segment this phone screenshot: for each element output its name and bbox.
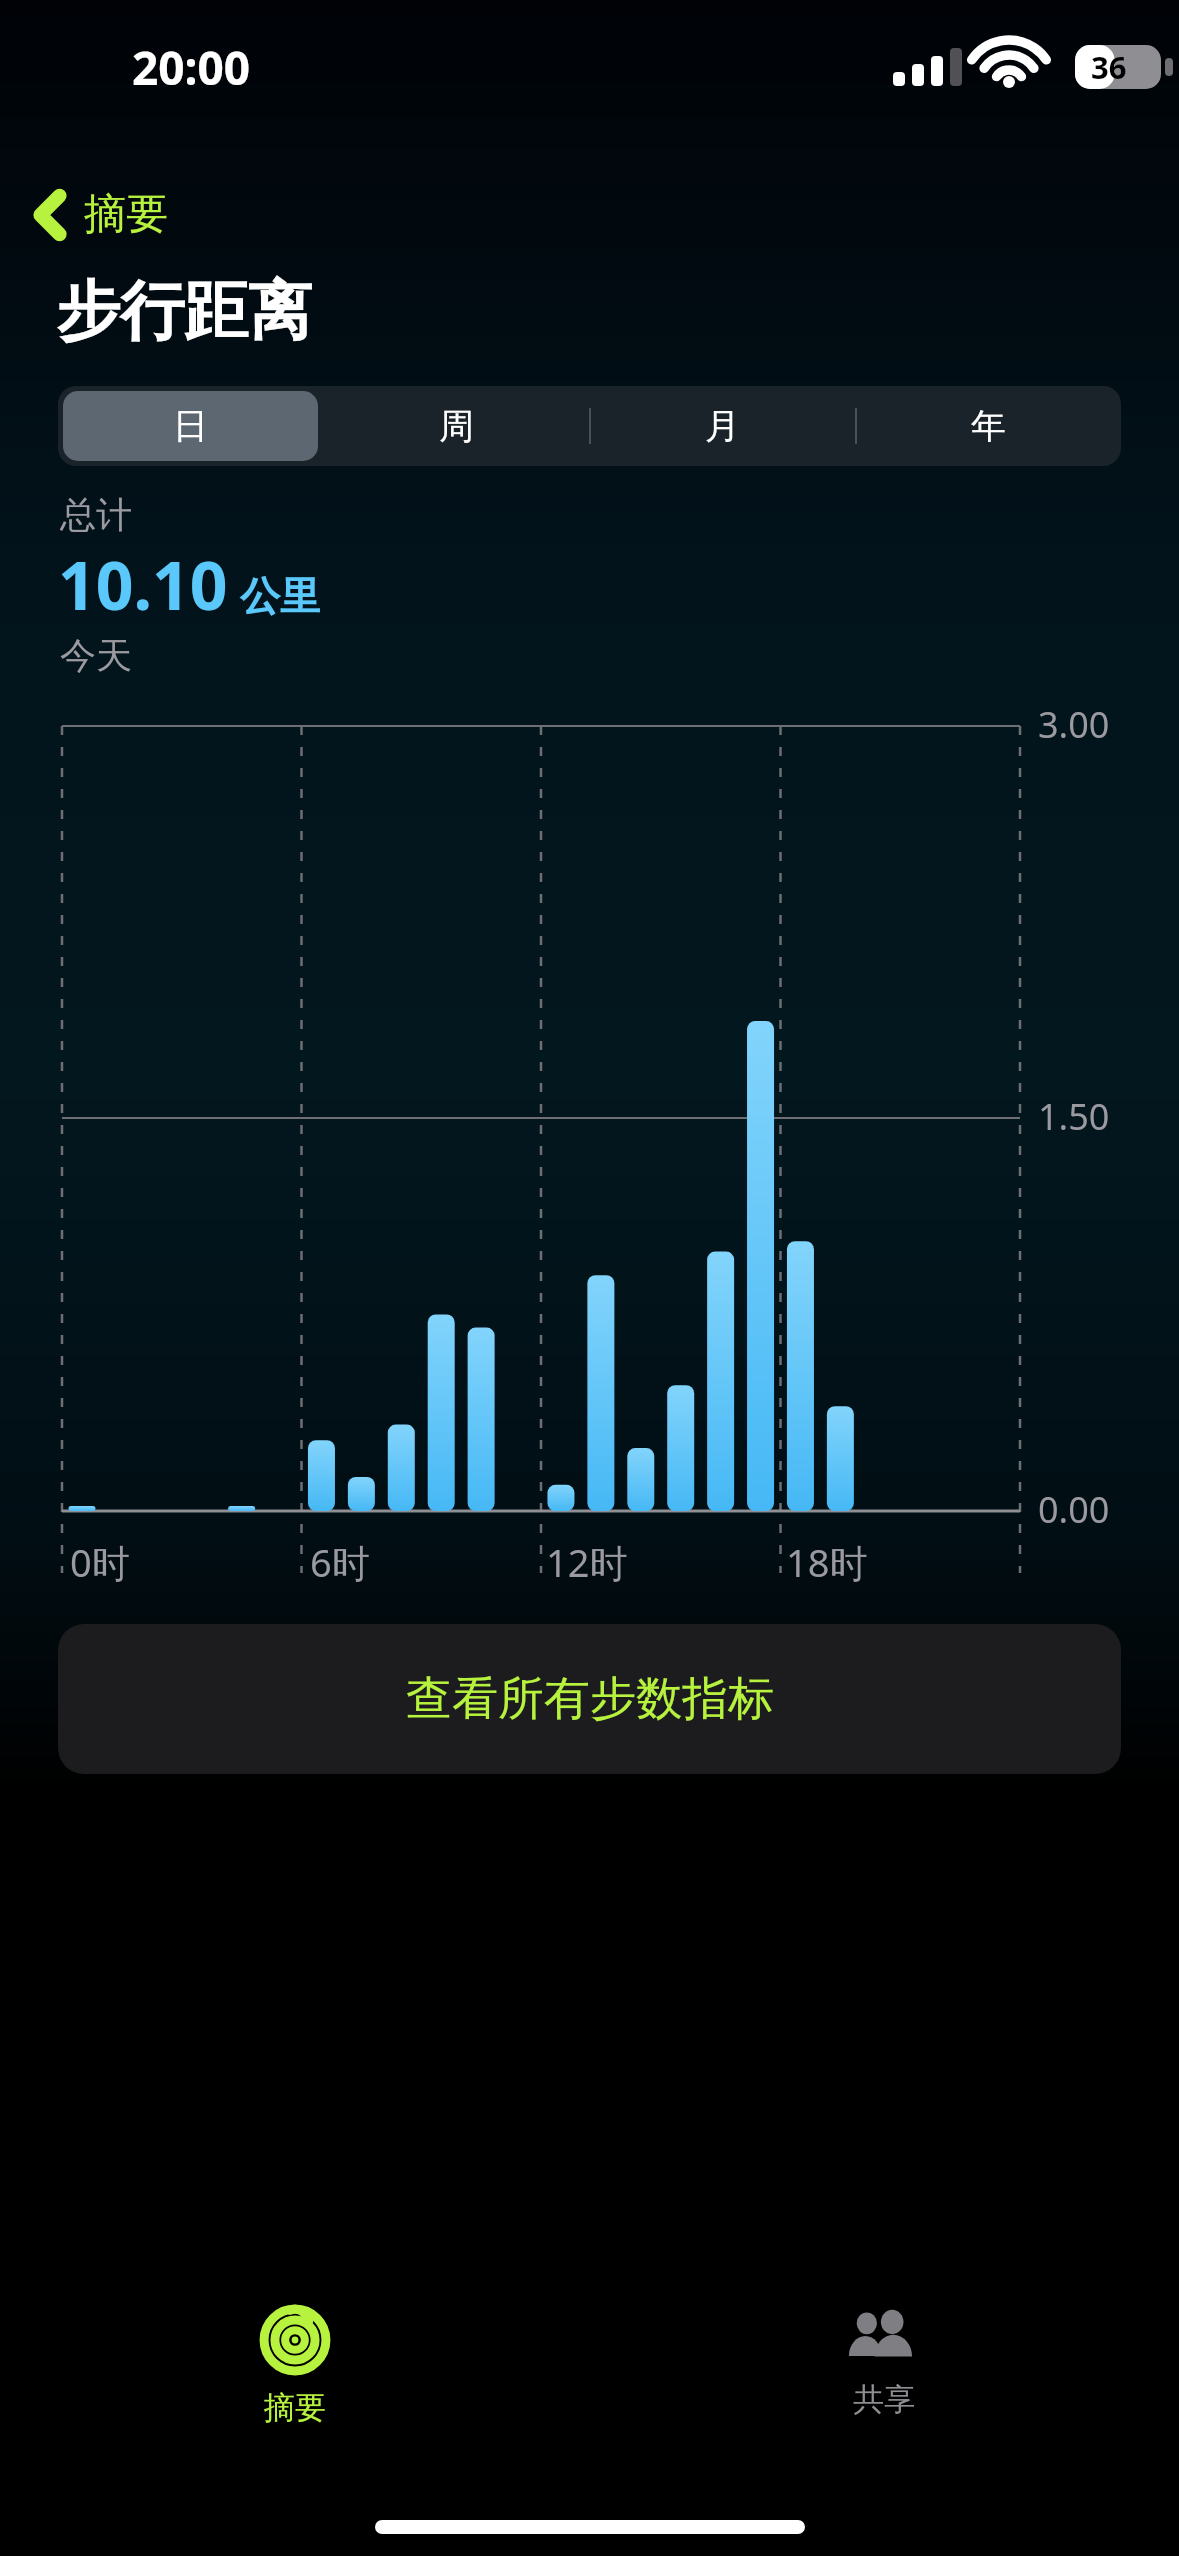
staticText: 0时 <box>70 1536 130 1588</box>
staticText: 月 <box>705 404 740 448</box>
button[interactable]: 共享 <box>589 2306 1179 2486</box>
other: Back <box>34 191 66 239</box>
staticText: 1.50 <box>1038 1092 1110 1141</box>
staticText: 20:00 <box>132 36 251 99</box>
staticText: 查看所有步数指标 <box>406 1670 774 1728</box>
staticText: 步行距离 <box>56 271 312 352</box>
staticText: 周 <box>439 404 474 448</box>
button[interactable]: 月 <box>589 386 855 466</box>
staticText: 18时 <box>786 1536 868 1588</box>
button[interactable]: 查看所有步数指标 <box>58 1624 1121 1774</box>
staticText: 0.00 <box>1038 1485 1110 1534</box>
staticText: 6时 <box>310 1536 370 1588</box>
staticText: 摘要 <box>84 188 168 241</box>
button[interactable]: 年 <box>855 386 1121 466</box>
button[interactable]: Back <box>22 180 196 249</box>
button[interactable]: 摘要 <box>0 2306 589 2486</box>
staticText: 3.00 <box>1038 700 1110 749</box>
staticText: 36 <box>1091 46 1127 88</box>
staticText: 10.10 <box>58 539 228 629</box>
staticText: 公里 <box>240 571 320 621</box>
staticText: 年 <box>971 404 1006 448</box>
button[interactable]: 周 <box>323 386 589 466</box>
button[interactable]: 日 <box>58 386 323 466</box>
staticText: 12时 <box>546 1536 628 1588</box>
staticText: 日 <box>173 404 208 448</box>
staticText: 共享 <box>853 2380 915 2419</box>
staticText: 今天 <box>60 633 132 678</box>
staticText: 摘要 <box>264 2388 326 2427</box>
staticText: 总计 <box>60 492 132 537</box>
